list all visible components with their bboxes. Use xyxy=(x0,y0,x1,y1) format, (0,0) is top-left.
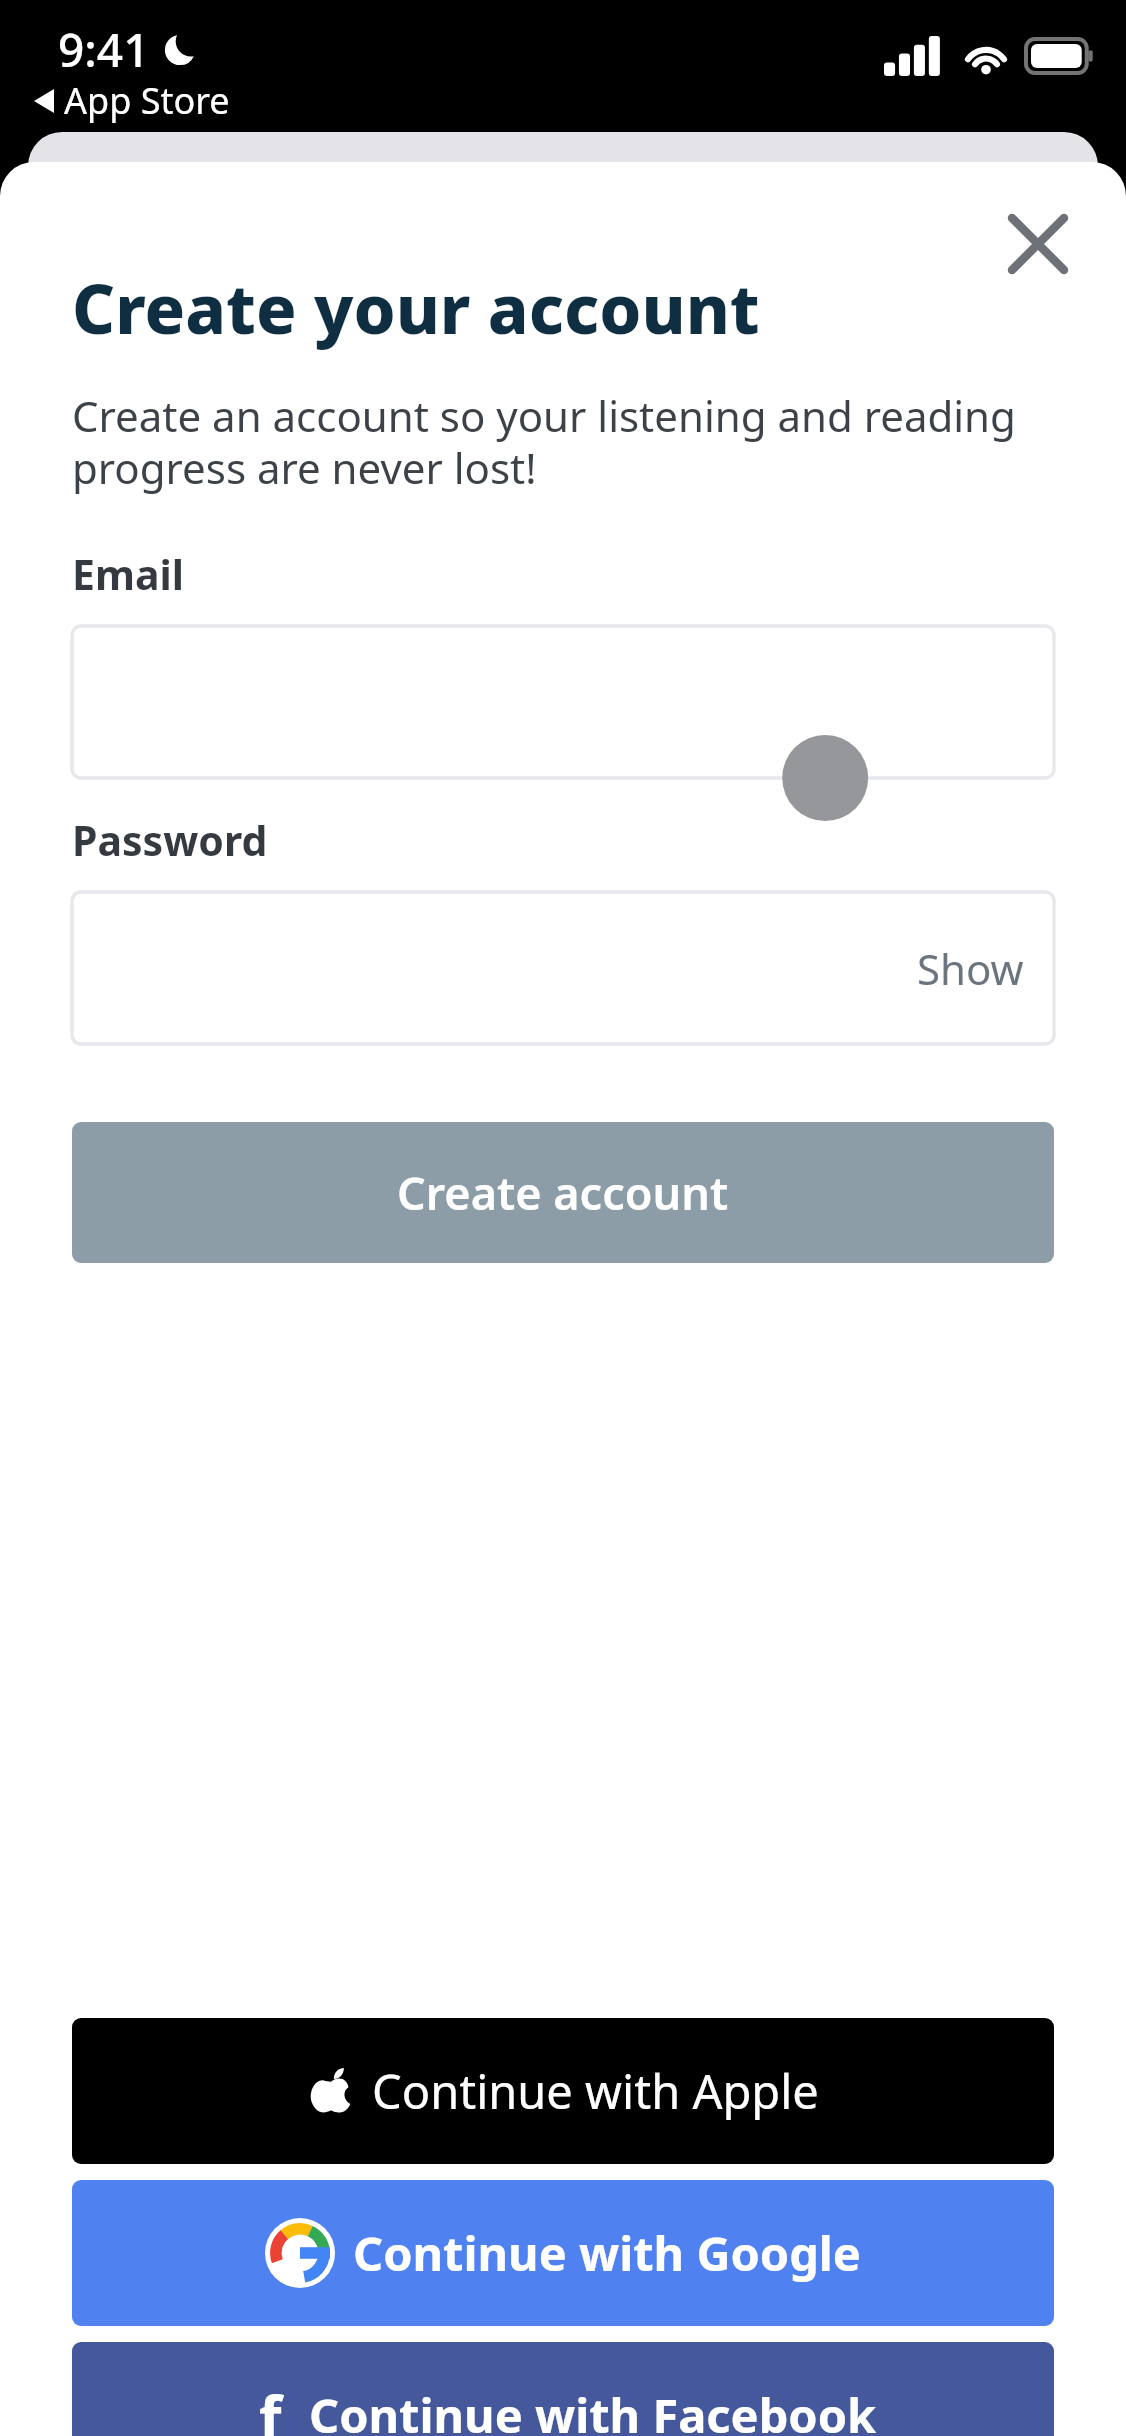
staticText: Show xyxy=(917,940,1024,997)
staticText: Create an account so your listening and … xyxy=(72,387,1054,496)
button[interactable]: Continue with Google xyxy=(72,2180,1054,2326)
staticText: f xyxy=(259,2376,282,2436)
staticText: Continue with Google xyxy=(353,2221,861,2285)
staticText: Continue with Apple xyxy=(372,2059,819,2123)
staticText: Create your account xyxy=(72,262,760,353)
staticText: Continue with Facebook xyxy=(309,2383,877,2436)
button[interactable]: Show xyxy=(72,892,1054,1044)
button[interactable] xyxy=(72,626,1054,778)
staticText: 9:41 xyxy=(58,18,150,81)
staticText: App Store xyxy=(64,76,230,125)
button[interactable]: Show xyxy=(917,940,1024,997)
staticText: Email xyxy=(72,546,184,602)
button[interactable]: Close xyxy=(996,202,1080,286)
staticText: Create account xyxy=(397,1162,729,1223)
staticText: Password xyxy=(72,812,268,868)
button[interactable]: f xyxy=(72,2342,1054,2436)
button[interactable]: Create account xyxy=(72,1122,1054,1263)
button[interactable]: Continue with Apple xyxy=(72,2018,1054,2164)
